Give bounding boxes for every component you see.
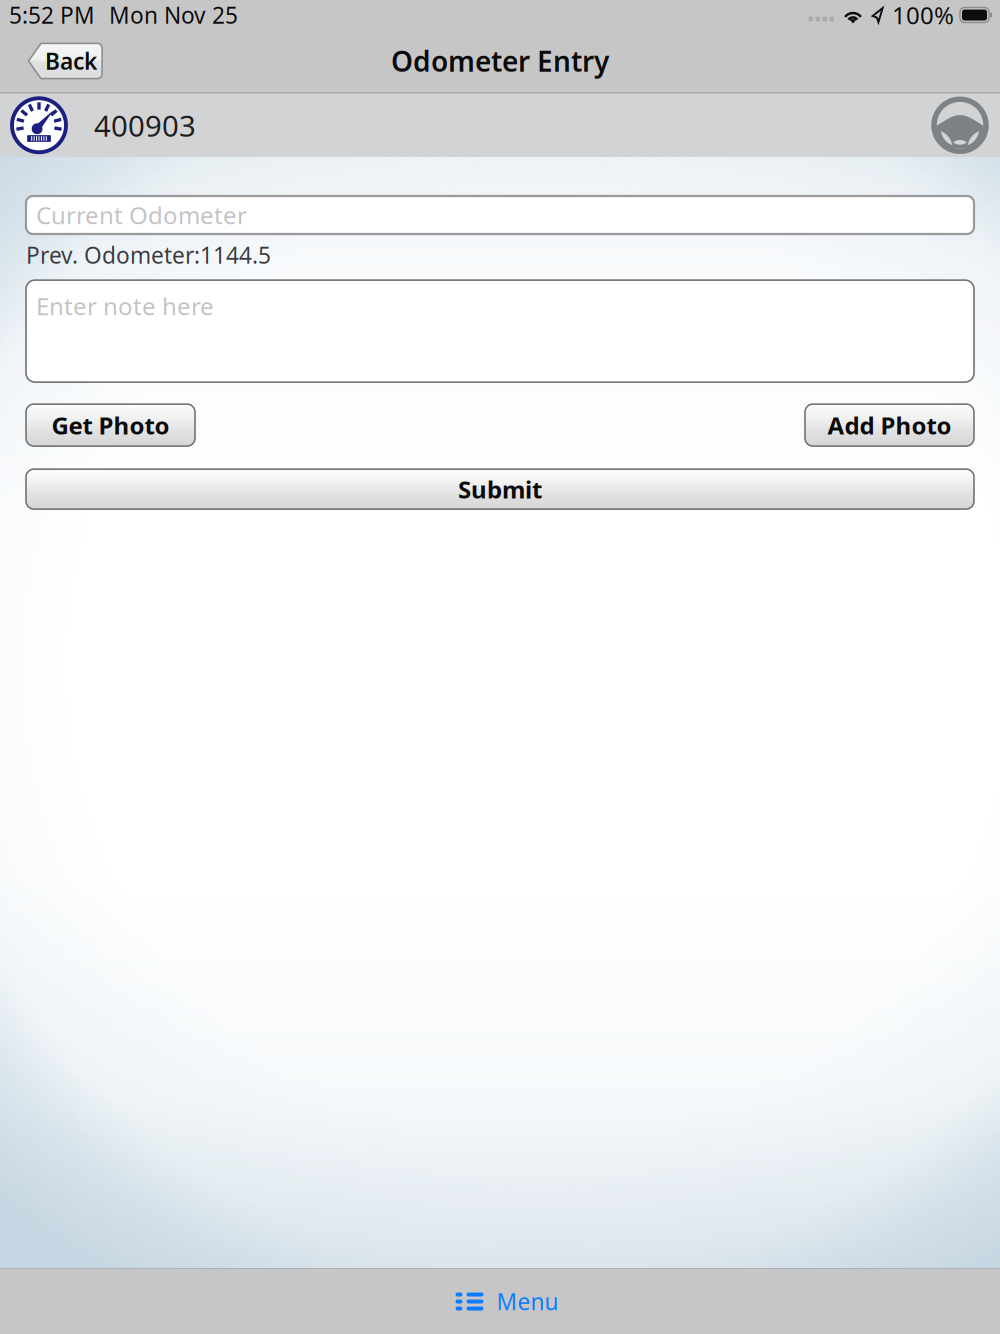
staticText: Back — [45, 46, 97, 76]
staticText: Mon Nov 25 — [109, 0, 238, 30]
staticText: Prev. Odometer:1144.5 — [26, 240, 271, 270]
staticText: Get Photo — [51, 409, 169, 441]
staticText: Add Photo — [827, 409, 951, 441]
button[interactable]: Add Photo — [805, 404, 974, 446]
button[interactable]: Back — [27, 42, 103, 79]
staticText: Enter note here — [36, 290, 214, 322]
button[interactable]: Menu — [0, 1269, 1000, 1334]
button[interactable]: Submit — [26, 469, 974, 509]
staticText: 5:52 PM — [9, 0, 95, 30]
button[interactable]: Get Photo — [26, 404, 195, 446]
staticText: 100% — [892, 0, 954, 31]
staticText: Submit — [458, 473, 542, 505]
staticText: Odometer Entry — [391, 42, 609, 80]
staticText: Menu — [496, 1286, 558, 1316]
staticText: Current Odometer — [36, 199, 247, 231]
staticText: 400903 — [94, 106, 196, 145]
